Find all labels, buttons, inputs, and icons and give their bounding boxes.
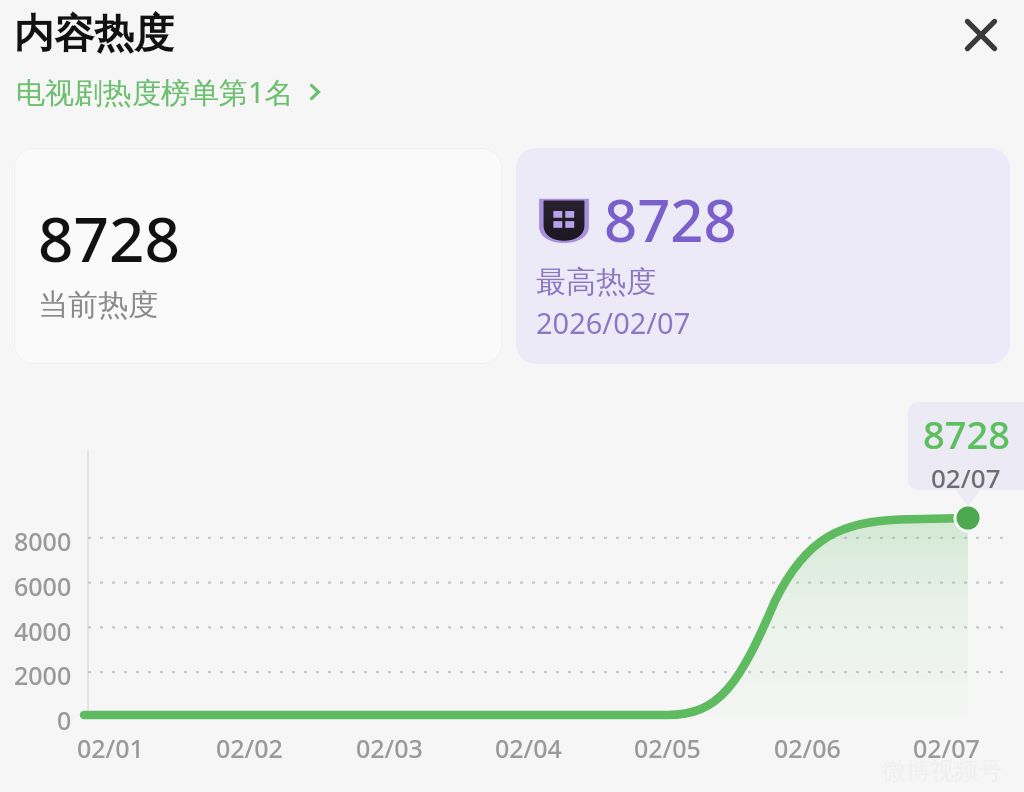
staticText: 6000 (14, 569, 72, 603)
staticText: 内容热度 (14, 8, 174, 58)
button[interactable]: 8728 (14, 148, 502, 364)
button[interactable]: Close (950, 4, 1012, 66)
staticText: 电视剧热度榜单第1名 (16, 72, 294, 112)
staticText: 02/07 (931, 460, 1001, 495)
staticText: 8728 (38, 196, 180, 280)
staticText: 02/05 (634, 731, 701, 765)
staticText: 02/02 (216, 731, 283, 765)
button[interactable]: 8728 (516, 148, 1010, 364)
button[interactable]: 电视剧热度榜单第1名 (14, 70, 328, 114)
staticText: 4000 (14, 614, 72, 648)
staticText: 8000 (14, 524, 72, 558)
staticText: 02/03 (356, 731, 423, 765)
staticText: 当前热度 (38, 286, 158, 324)
staticText: 0 (57, 703, 72, 737)
staticText: 02/04 (495, 731, 562, 765)
staticText: 最高热度 (536, 263, 656, 301)
staticText: 2000 (14, 658, 72, 692)
staticText: 2026/02/07 (536, 303, 691, 342)
staticText: 02/01 (77, 731, 144, 765)
staticText: 02/07 (913, 731, 980, 765)
staticText: 8728 (604, 180, 737, 259)
staticText: 02/06 (774, 731, 841, 765)
staticText: 8728 (923, 408, 1010, 460)
staticText: 微博视频号 (882, 756, 1002, 786)
